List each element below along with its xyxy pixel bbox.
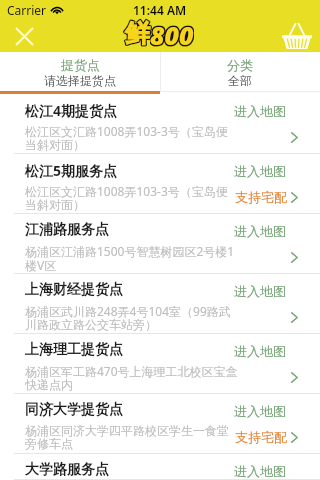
staticText: 鲜 (125, 18, 150, 49)
button[interactable]: 松江5期服务点 (0, 154, 320, 214)
staticText: 杨浦区同济大学四平路校区学生一食堂旁修车点 (25, 423, 239, 452)
staticText: 进入地图 (234, 223, 286, 239)
staticText: 杨浦区军工路470号上海理工北校区宝盒快递点内 (25, 363, 239, 393)
staticText: 800 (150, 18, 194, 50)
button[interactable]: 同济大学提货点 (0, 394, 320, 454)
staticText: 进入地图 (234, 343, 286, 359)
staticText: 松江区文汇路1008弄103-3号（宝岛便当斜对面） (25, 183, 239, 213)
staticText: 上海理工提货点 (25, 341, 123, 359)
button[interactable]: 分类 (160, 52, 320, 91)
staticText: 杨浦区武川路248弄4号104室（99路武川路政立路公交车站旁） (25, 303, 239, 333)
staticText: 提货点 (61, 57, 100, 73)
button[interactable]: 松江4期提货点 (0, 94, 320, 154)
staticText: 分类 (227, 57, 253, 73)
staticText: 江浦路服务点 (25, 221, 109, 239)
staticText: 松江区文汇路1008弄103-3号（宝岛便当斜对面） (25, 123, 239, 153)
staticText: 上海财经提货点 (25, 281, 123, 299)
staticText: 支持宅配 (235, 189, 287, 205)
staticText: 请选择提货点 (44, 73, 116, 88)
staticText: 支持宅配 (235, 429, 287, 445)
staticText: 进入地图 (234, 103, 286, 119)
button[interactable]: 上海财经提货点 (0, 274, 320, 334)
staticText: 杨浦区江浦路1500号智慧树园区2号楼1楼V区 (25, 243, 239, 273)
staticText: 松江5期服务点 (25, 161, 118, 180)
button[interactable]: Close (10, 22, 38, 50)
staticText: 进入地图 (234, 463, 286, 479)
staticText: 鲜 (125, 18, 150, 49)
staticText: 进入地图 (234, 163, 286, 179)
staticText: 进入地图 (234, 283, 286, 299)
button[interactable]: 上海理工提货点 (0, 334, 320, 394)
staticText: 松江4期提货点 (25, 101, 118, 120)
staticText: Carrier (7, 2, 47, 18)
button[interactable]: 大学路服务点 (0, 454, 320, 480)
staticText: 全部 (228, 73, 252, 88)
button[interactable]: 提货点 (0, 52, 160, 91)
staticText: 11:44 AM (133, 2, 187, 18)
button[interactable]: Shopping cart (280, 20, 314, 52)
staticText: 同济大学提货点 (25, 401, 123, 419)
staticText: 大学路服务点 (25, 461, 109, 479)
button[interactable]: 江浦路服务点 (0, 214, 320, 274)
staticText: 进入地图 (234, 403, 286, 419)
staticText: 800 (150, 18, 194, 50)
